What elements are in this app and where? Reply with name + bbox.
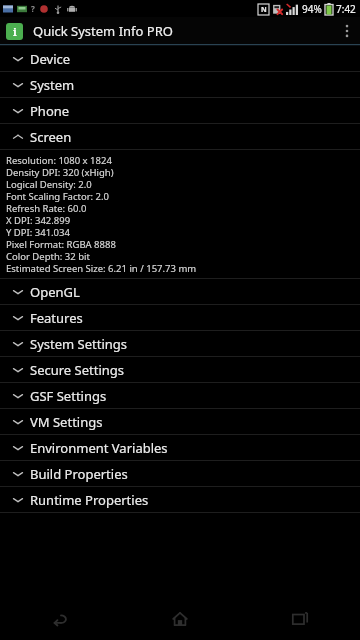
- button[interactable]: System: [0, 72, 360, 97]
- button[interactable]: Home: [120, 598, 240, 640]
- button[interactable]: System Settings: [0, 331, 360, 356]
- button[interactable]: Device: [0, 46, 360, 71]
- staticText: Density DPI: 320 (xHigh): [6, 166, 114, 178]
- staticText: 94%: [302, 2, 322, 16]
- staticText: Logical Density: 2.0: [6, 178, 92, 190]
- staticText: 7:42: [336, 2, 356, 16]
- staticText: N: [261, 5, 267, 15]
- button[interactable]: Phone: [0, 98, 360, 123]
- staticText: Secure Settings: [30, 361, 125, 379]
- staticText: System Settings: [30, 335, 128, 353]
- button[interactable]: Recents: [240, 598, 360, 640]
- staticText: Environment Variables: [30, 439, 168, 457]
- button[interactable]: VM Settings: [0, 409, 360, 434]
- staticText: Estimated Screen Size: 6.21 in / 157.73 …: [6, 262, 197, 274]
- staticText: X DPI: 342.899: [6, 214, 71, 226]
- staticText: Color Depth: 32 bit: [6, 250, 90, 262]
- staticText: Runtime Properties: [30, 491, 149, 509]
- staticText: Font Scaling Factor: 2.0: [6, 190, 109, 202]
- staticText: Resolution: 1080 x 1824: [6, 154, 112, 166]
- button[interactable]: Secure Settings: [0, 357, 360, 382]
- staticText: GSF Settings: [30, 387, 107, 405]
- staticText: i: [13, 24, 17, 39]
- staticText: Build Properties: [30, 465, 128, 483]
- button[interactable]: OpenGL: [0, 279, 360, 304]
- staticText: Screen: [30, 128, 72, 146]
- staticText: Refresh Rate: 60.0: [6, 202, 87, 214]
- button[interactable]: Screen: [0, 124, 360, 149]
- staticText: Pixel Format: RGBA 8888: [6, 238, 116, 250]
- button[interactable]: Back: [0, 598, 120, 640]
- button[interactable]: GSF Settings: [0, 383, 360, 408]
- staticText: System: [30, 76, 75, 94]
- button[interactable]: Build Properties: [0, 461, 360, 486]
- button[interactable]: More options: [334, 17, 360, 44]
- staticText: Device: [30, 50, 71, 68]
- staticText: VM Settings: [30, 413, 103, 431]
- staticText: ?: [31, 3, 35, 14]
- staticText: Y DPI: 341.034: [6, 226, 70, 238]
- staticText: Quick System Info PRO: [33, 22, 173, 40]
- button[interactable]: Features: [0, 305, 360, 330]
- button[interactable]: Runtime Properties: [0, 487, 360, 512]
- staticText: Phone: [30, 102, 70, 120]
- button[interactable]: Environment Variables: [0, 435, 360, 460]
- staticText: OpenGL: [30, 283, 80, 301]
- staticText: Features: [30, 309, 83, 327]
